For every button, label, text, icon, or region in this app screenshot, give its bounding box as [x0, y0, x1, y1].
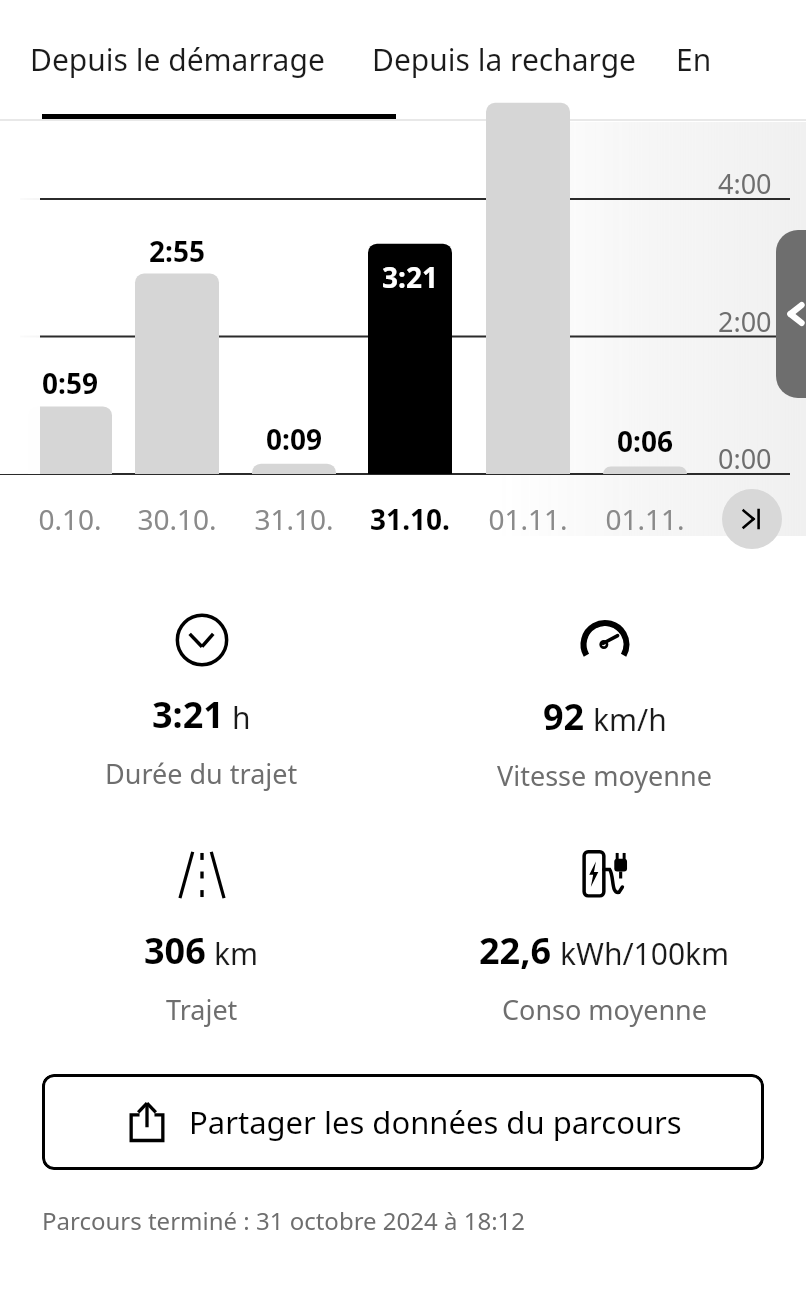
staticText: 0:09 [266, 420, 322, 458]
staticText: 3:21 [382, 258, 438, 296]
staticText: Vitesse moyenne [497, 757, 712, 794]
button[interactable]: Ouvrir le panneau [776, 230, 806, 398]
staticText: 306 [144, 926, 206, 975]
staticText: 0:06 [617, 422, 673, 460]
staticText: 0:00 [718, 440, 772, 477]
button[interactable]: Depuis le démarrage [0, 0, 354, 118]
staticText: 22,6 [479, 926, 552, 975]
button[interactable]: 22,6 [403, 846, 806, 1028]
button[interactable]: 31.10. [239, 497, 349, 541]
staticText: Depuis le démarrage [30, 39, 325, 80]
button[interactable]: 92 [403, 612, 806, 794]
staticText: 0:59 [42, 364, 98, 402]
staticText: Durée du trajet [105, 755, 298, 792]
button[interactable]: 0.10. [15, 497, 125, 541]
staticText: En [676, 39, 712, 80]
button[interactable]: En [654, 0, 806, 118]
button[interactable]: 306 [0, 846, 403, 1028]
staticText: Trajet [166, 991, 238, 1028]
button[interactable]: Aller à la fin [722, 489, 782, 549]
button[interactable]: Depuis la recharge [354, 0, 654, 118]
staticText: 3:21 [152, 690, 224, 739]
staticText: 2:00 [718, 303, 772, 340]
staticText: 0.10. [38, 500, 102, 538]
staticText: 31.10. [254, 500, 334, 538]
staticText: 2:55 [149, 232, 205, 270]
staticText: 01.11. [488, 500, 568, 538]
staticText: 31.10. [370, 500, 450, 538]
staticText: 92 [543, 692, 585, 741]
staticText: h [232, 697, 251, 738]
staticText: 01.11. [605, 500, 685, 538]
staticText: Parcours terminé : 31 octobre 2024 à 18:… [42, 1204, 526, 1237]
staticText: 4:00 [718, 165, 772, 202]
button[interactable]: 01.11. [590, 497, 700, 541]
button[interactable]: 01.11. [473, 497, 583, 541]
staticText: kWh/100km [560, 933, 730, 974]
staticText: Depuis la recharge [372, 39, 637, 80]
staticText: km [214, 933, 259, 974]
staticText: km/h [593, 699, 667, 740]
button[interactable]: 3:21 [0, 612, 403, 792]
button[interactable]: 30.10. [122, 497, 232, 541]
staticText: 30.10. [137, 500, 217, 538]
button[interactable]: 31.10. [355, 497, 465, 541]
button[interactable]: Partager les données du parcours [42, 1074, 764, 1170]
staticText: Conso moyenne [502, 991, 708, 1028]
staticText: Partager les données du parcours [189, 1101, 682, 1143]
